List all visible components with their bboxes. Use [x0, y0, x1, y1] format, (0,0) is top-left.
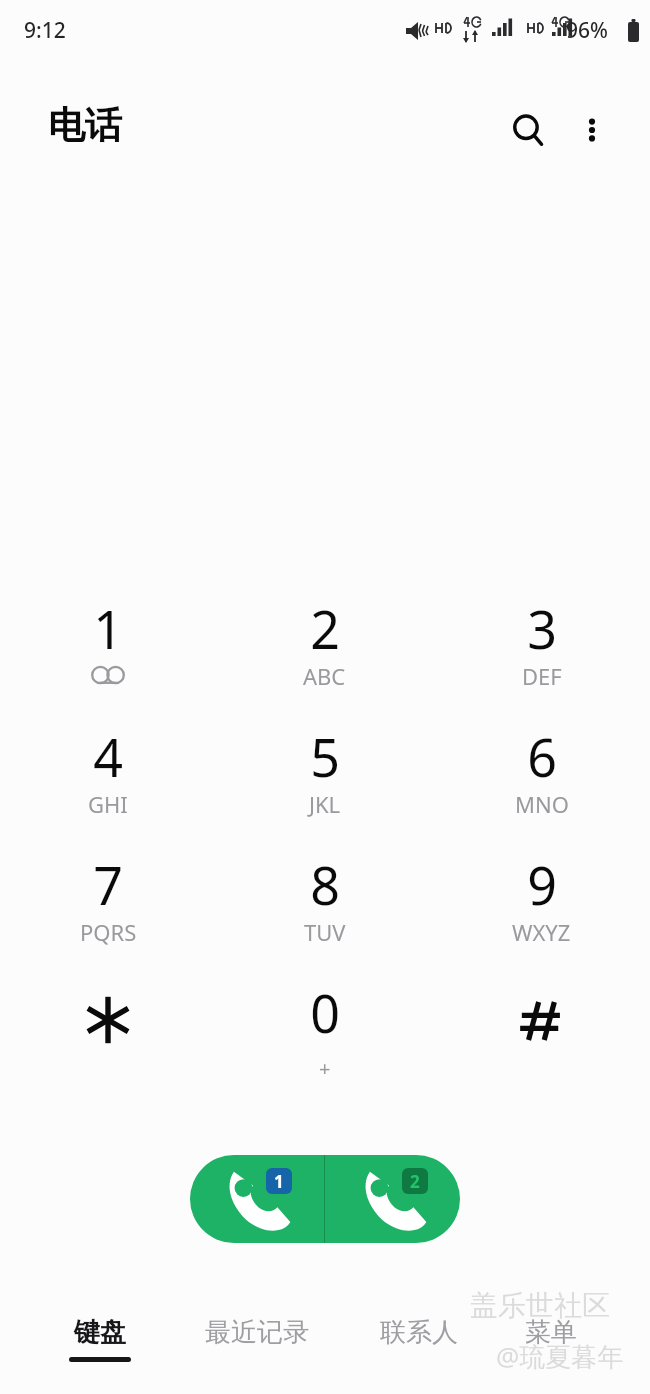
staticText: PQRS — [80, 917, 137, 947]
staticText: 1 — [93, 593, 123, 664]
button[interactable]: Call with SIM 1 — [190, 1155, 324, 1243]
button[interactable]: 7 — [0, 841, 216, 969]
staticText: 联系人 — [380, 1316, 458, 1349]
staticText: TUV — [304, 917, 346, 947]
staticText: 3 — [527, 593, 557, 664]
button[interactable]: Search — [498, 100, 558, 160]
staticText: 7 — [93, 849, 123, 920]
staticText: 2 — [310, 593, 340, 664]
button[interactable] — [0, 969, 216, 1097]
button[interactable]: 9 — [433, 841, 650, 969]
staticText: 5 — [310, 721, 340, 792]
staticText: MNO — [515, 789, 569, 819]
staticText: 电话 — [48, 102, 122, 149]
button[interactable] — [433, 969, 650, 1097]
button[interactable]: 最近记录 — [182, 1316, 332, 1388]
staticText: 6 — [527, 721, 557, 792]
staticText: @琉夏暮年 — [496, 1338, 624, 1374]
staticText: GHI — [88, 789, 128, 819]
button[interactable]: 5 — [216, 713, 433, 841]
staticText: 键盘 — [74, 1316, 126, 1349]
staticText: 9:12 — [24, 16, 66, 45]
button[interactable]: 1 — [0, 585, 216, 713]
button[interactable]: 8 — [216, 841, 433, 969]
button[interactable]: More options — [562, 100, 622, 160]
staticText: 菜单 — [525, 1316, 577, 1349]
staticText: JKL — [309, 789, 341, 819]
staticText: 9 — [527, 849, 557, 920]
button[interactable]: 联系人 — [344, 1316, 494, 1388]
button[interactable]: 0 — [216, 969, 433, 1097]
staticText: 8 — [310, 849, 340, 920]
button[interactable]: 2 — [216, 585, 433, 713]
staticText: 盖乐世社区 — [470, 1288, 610, 1323]
staticText: 96% — [566, 16, 608, 45]
button[interactable]: 6 — [433, 713, 650, 841]
staticText: 0 — [310, 977, 340, 1048]
button[interactable]: 3 — [433, 585, 650, 713]
staticText: WXYZ — [512, 917, 571, 947]
staticText: 最近记录 — [205, 1316, 309, 1349]
button[interactable]: 菜单 — [476, 1316, 626, 1388]
staticText: 1 — [274, 1170, 284, 1193]
button[interactable]: Call with SIM 2 — [325, 1155, 460, 1243]
staticText: 2 — [410, 1170, 420, 1193]
staticText: DEF — [522, 661, 562, 691]
staticText: 4 — [93, 721, 123, 792]
staticText: + — [319, 1055, 331, 1082]
button[interactable]: 键盘 — [40, 1316, 160, 1388]
staticText: ABC — [303, 661, 346, 691]
button[interactable]: 4 — [0, 713, 216, 841]
